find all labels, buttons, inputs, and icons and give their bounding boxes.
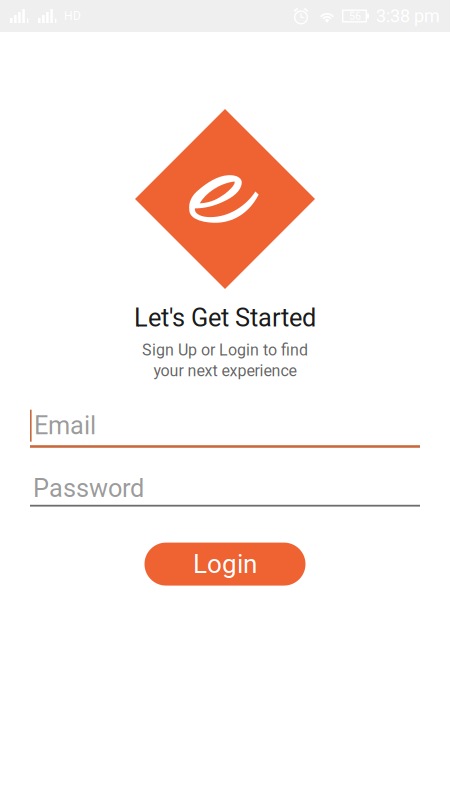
button[interactable]: Email: [30, 409, 420, 448]
staticText: Sign Up or Login to find: [142, 341, 308, 359]
staticText: Login: [193, 549, 257, 579]
staticText: 3:38 pm: [376, 5, 440, 27]
button[interactable]: Login: [144, 543, 305, 586]
staticText: HD: [64, 9, 81, 23]
staticText: 56: [349, 10, 361, 22]
staticText: Email: [34, 411, 96, 440]
staticText: your next experience: [153, 361, 296, 380]
staticText: Password: [33, 473, 144, 503]
button[interactable]: Password: [30, 472, 420, 507]
staticText: Let's Get Started: [134, 303, 316, 333]
